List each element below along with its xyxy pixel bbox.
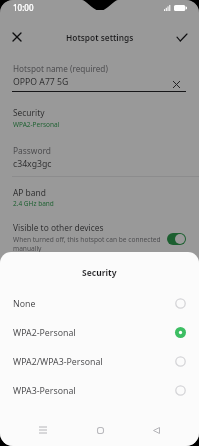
staticText: WPA2-Personal [13, 327, 175, 339]
staticText: Security [13, 107, 45, 118]
button[interactable]: Close [6, 26, 28, 48]
button[interactable]: Back [142, 416, 170, 444]
staticText: When turned off, this hotspot can be con… [13, 235, 161, 244]
staticText: Security [82, 267, 117, 279]
staticText: Password [13, 145, 51, 156]
staticText: c34xg3gc [13, 158, 52, 170]
button[interactable]: Clear hotspot name [172, 80, 181, 89]
staticText: 2.4 GHz band [13, 199, 54, 208]
button[interactable]: Confirm [171, 26, 193, 48]
staticText: 10:00 [13, 2, 34, 13]
button[interactable]: WPA3-Personal [0, 376, 199, 405]
staticText: Hotspot settings [66, 32, 134, 43]
button[interactable]: WPA2-Personal [0, 318, 199, 347]
staticText: WPA3-Personal [13, 385, 175, 397]
staticText: Visible to other devices [13, 222, 104, 233]
button[interactable]: Home [86, 416, 114, 444]
staticText: None [13, 298, 175, 310]
button[interactable]: Visible to other devices toggle [167, 233, 186, 245]
staticText: manually [13, 244, 42, 253]
staticText: OPPO A77 5G [13, 76, 69, 88]
staticText: WPA2-Personal [13, 120, 60, 129]
button[interactable]: None [0, 289, 199, 318]
staticText: Hotspot name (required) [13, 63, 108, 74]
staticText: WPA2/WPA3-Personal [13, 356, 175, 368]
staticText: AP band [13, 187, 46, 198]
button[interactable]: WPA2/WPA3-Personal [0, 347, 199, 376]
button[interactable]: Recent apps [29, 416, 57, 444]
